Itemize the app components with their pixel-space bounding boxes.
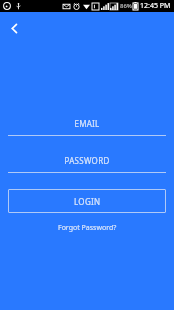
staticText: LOGIN bbox=[74, 196, 101, 207]
button[interactable]: PASSWORD bbox=[8, 155, 166, 173]
staticText: Forgot Password? bbox=[58, 223, 117, 233]
staticText: EMAIL bbox=[74, 118, 100, 129]
button[interactable]: Forgot Password? bbox=[54, 221, 121, 235]
button[interactable]: Back bbox=[2, 16, 26, 40]
staticText: 12:45 PM bbox=[140, 1, 171, 11]
staticText: 86% bbox=[120, 2, 132, 10]
button[interactable]: LOGIN bbox=[8, 189, 166, 213]
button[interactable]: EMAIL bbox=[8, 118, 166, 136]
staticText: PASSWORD bbox=[64, 155, 110, 166]
